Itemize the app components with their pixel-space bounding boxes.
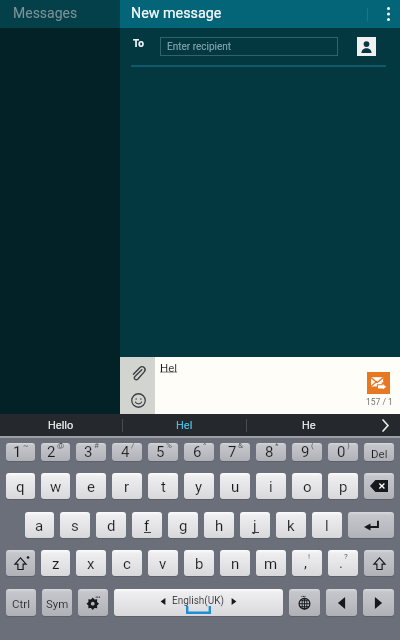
staticText: / xyxy=(131,443,135,450)
staticText: s xyxy=(71,517,79,535)
button[interactable]: Move cursor left xyxy=(326,589,357,616)
button[interactable]: Messages xyxy=(0,0,120,28)
button[interactable]: f xyxy=(132,512,162,538)
button[interactable]: p xyxy=(328,473,358,499)
button[interactable]: d xyxy=(96,512,126,538)
staticText: Messages xyxy=(13,5,78,21)
button[interactable]: Enter xyxy=(348,512,394,538)
staticText: m xyxy=(264,555,278,573)
button[interactable]: . xyxy=(328,550,358,576)
button[interactable]: s xyxy=(60,512,90,538)
button[interactable]: y xyxy=(184,473,214,499)
button[interactable]: 0 xyxy=(328,443,358,461)
button[interactable]: q xyxy=(6,473,35,499)
staticText: 7 xyxy=(228,443,237,461)
button[interactable]: Send xyxy=(367,372,390,394)
button[interactable]: Shift xyxy=(6,550,35,576)
staticText: English(UK) xyxy=(172,595,225,607)
staticText: v xyxy=(159,555,167,573)
button[interactable]: r xyxy=(112,473,142,499)
button[interactable]: Enter recipient xyxy=(160,37,338,56)
staticText: Enter recipient xyxy=(167,41,232,53)
staticText: Hello xyxy=(48,419,74,432)
button[interactable]: Hel xyxy=(123,414,246,436)
button[interactable]: t xyxy=(148,473,178,499)
button[interactable]: Key xyxy=(114,589,283,616)
staticText: o xyxy=(303,478,312,496)
button[interactable]: h xyxy=(204,512,234,538)
staticText: r xyxy=(124,478,130,496)
button[interactable]: l xyxy=(312,512,342,538)
button[interactable]: k xyxy=(276,512,306,538)
staticText: h xyxy=(215,517,224,535)
button[interactable]: 3 xyxy=(76,443,106,461)
button[interactable]: o xyxy=(292,473,322,499)
staticText: p xyxy=(339,478,348,496)
staticText: Sym xyxy=(46,597,69,610)
button[interactable]: b xyxy=(184,550,214,576)
button[interactable]: i xyxy=(256,473,286,499)
staticText: l xyxy=(325,517,329,535)
button[interactable]: Move cursor right xyxy=(363,589,394,616)
staticText: 5 xyxy=(156,443,165,461)
button[interactable]: Choose contact xyxy=(357,37,376,56)
staticText: k xyxy=(287,517,295,535)
staticText: To xyxy=(133,38,144,50)
button[interactable]: n xyxy=(220,550,250,576)
button[interactable]: Attach xyxy=(124,358,152,386)
button[interactable]: g xyxy=(168,512,198,538)
button[interactable]: u xyxy=(220,473,250,499)
staticText: w xyxy=(50,478,62,496)
staticText: # xyxy=(94,443,99,450)
button[interactable]: 9 xyxy=(292,443,322,461)
button[interactable]: More options xyxy=(376,0,400,28)
staticText: 1 xyxy=(13,443,22,461)
button[interactable]: Del xyxy=(364,443,394,461)
staticText: y xyxy=(195,478,203,496)
staticText: , xyxy=(304,554,307,572)
button[interactable]: , xyxy=(292,550,322,576)
staticText: g xyxy=(179,517,188,535)
button[interactable]: a xyxy=(25,512,54,538)
button[interactable]: 4 xyxy=(112,443,142,461)
staticText: 157 / 1 xyxy=(366,397,393,407)
button[interactable]: c xyxy=(112,550,142,576)
staticText: 8 xyxy=(265,443,274,461)
button[interactable]: 7 xyxy=(220,443,250,461)
button[interactable]: Sym xyxy=(42,589,72,616)
button[interactable]: 6 xyxy=(184,443,214,461)
button[interactable]: 5 xyxy=(148,443,178,461)
staticText: e xyxy=(87,478,95,496)
button[interactable]: v xyxy=(148,550,178,576)
button[interactable]: z xyxy=(41,550,70,576)
button[interactable]: Shift xyxy=(364,550,394,576)
button[interactable]: Hello xyxy=(0,414,122,436)
staticText: u xyxy=(231,478,240,496)
button[interactable]: Ctrl xyxy=(6,589,36,616)
button[interactable]: 8 xyxy=(256,443,286,461)
staticText: 4 xyxy=(121,443,130,461)
button[interactable]: w xyxy=(41,473,70,499)
button[interactable]: e xyxy=(76,473,106,499)
button[interactable]: Insert emoticon xyxy=(124,386,152,414)
staticText: & xyxy=(238,443,243,450)
button[interactable]: Backspace xyxy=(364,473,394,499)
button[interactable]: Keyboard settings xyxy=(78,589,108,616)
staticText: * xyxy=(275,443,279,450)
staticText: b xyxy=(195,555,204,573)
button[interactable]: 2 xyxy=(41,443,70,461)
button[interactable]: Change language xyxy=(289,589,320,616)
staticText: 6 xyxy=(193,443,202,461)
button[interactable]: x xyxy=(76,550,106,576)
staticText: f xyxy=(144,517,150,535)
button[interactable]: More suggestions xyxy=(370,414,400,436)
staticText: % xyxy=(166,443,172,450)
button[interactable]: He xyxy=(247,414,370,436)
staticText: 0 xyxy=(337,443,346,461)
button[interactable]: j xyxy=(240,512,270,538)
staticText: Ctrl xyxy=(12,597,30,610)
staticText: a xyxy=(35,517,44,535)
staticText: ) xyxy=(347,443,350,450)
button[interactable]: m xyxy=(256,550,286,576)
button[interactable]: 1 xyxy=(6,443,35,461)
